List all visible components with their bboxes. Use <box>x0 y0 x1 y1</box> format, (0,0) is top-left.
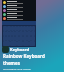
staticText: Personalize your phone <box>3 67 31 70</box>
button[interactable] <box>12 31 15 36</box>
button[interactable] <box>2 4 36 8</box>
button[interactable] <box>27 31 31 36</box>
button[interactable] <box>6 36 9 41</box>
button[interactable] <box>11 26 14 31</box>
button[interactable] <box>26 26 29 31</box>
staticText: Keyboard <box>10 47 29 52</box>
button[interactable] <box>29 26 32 31</box>
button[interactable] <box>15 36 19 41</box>
button[interactable] <box>2 16 36 20</box>
button[interactable] <box>20 26 23 31</box>
button[interactable] <box>23 31 27 36</box>
button[interactable] <box>9 36 12 41</box>
button[interactable] <box>23 26 26 31</box>
button[interactable] <box>15 31 19 36</box>
button[interactable] <box>31 31 35 36</box>
button[interactable] <box>2 8 36 12</box>
button[interactable] <box>6 31 9 36</box>
button[interactable] <box>3 26 7 31</box>
button[interactable] <box>14 26 17 31</box>
button[interactable] <box>3 36 6 41</box>
button[interactable] <box>27 36 31 41</box>
button[interactable] <box>19 36 23 41</box>
button[interactable] <box>32 26 35 31</box>
staticText: themes <box>3 60 20 66</box>
button[interactable] <box>9 31 12 36</box>
button[interactable] <box>31 36 35 41</box>
button[interactable] <box>23 36 27 41</box>
button[interactable] <box>7 26 11 31</box>
staticText: Rainbow Keyboard <box>3 53 45 59</box>
button[interactable] <box>3 31 6 36</box>
button[interactable] <box>19 31 23 36</box>
button[interactable]: App icon <box>2 46 9 53</box>
button[interactable] <box>2 12 36 16</box>
button[interactable] <box>17 26 20 31</box>
button[interactable] <box>12 36 15 41</box>
button[interactable] <box>2 0 36 4</box>
